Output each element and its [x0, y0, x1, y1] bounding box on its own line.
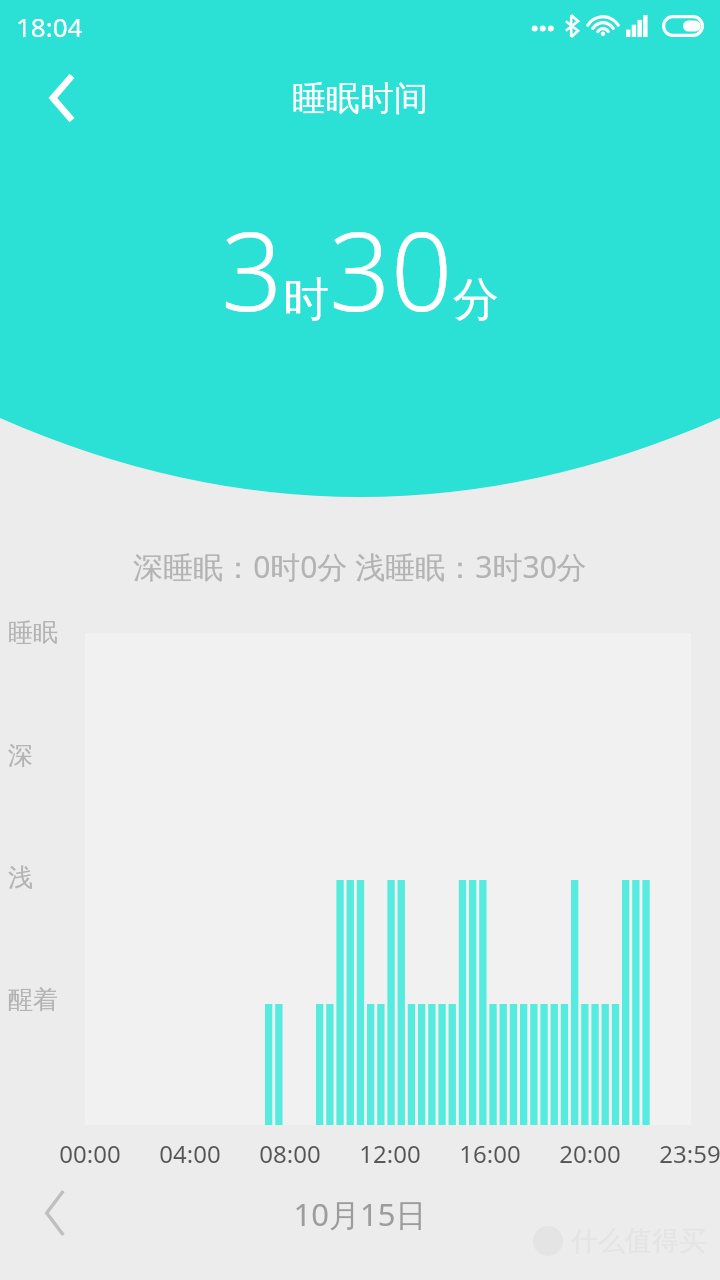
staticText: 04:00	[140, 1137, 240, 1170]
staticText: 深	[8, 740, 33, 771]
button[interactable]: Back	[28, 63, 98, 133]
staticText: 分	[453, 271, 499, 329]
button[interactable]: Previous day	[20, 1178, 90, 1248]
staticText: 睡眠时间	[292, 77, 428, 120]
staticText: 12:00	[340, 1137, 440, 1170]
staticText: 16:00	[440, 1137, 540, 1170]
staticText: 3	[221, 196, 283, 343]
staticText: 20:00	[540, 1137, 640, 1170]
staticText: 时	[283, 271, 329, 329]
staticText: 18:04	[16, 9, 83, 44]
staticText: 睡眠	[8, 617, 58, 648]
staticText: 醒着	[8, 984, 58, 1015]
staticText: 10月15日	[0, 1193, 720, 1235]
staticText: 23:59	[640, 1137, 720, 1170]
staticText: 00:00	[40, 1137, 140, 1170]
staticText: 什么值得买	[571, 1224, 706, 1258]
staticText: 08:00	[240, 1137, 340, 1170]
staticText: 深睡眠：0时0分 浅睡眠：3时30分	[0, 546, 720, 587]
staticText: 30	[329, 196, 453, 343]
staticText: 浅	[8, 862, 33, 893]
